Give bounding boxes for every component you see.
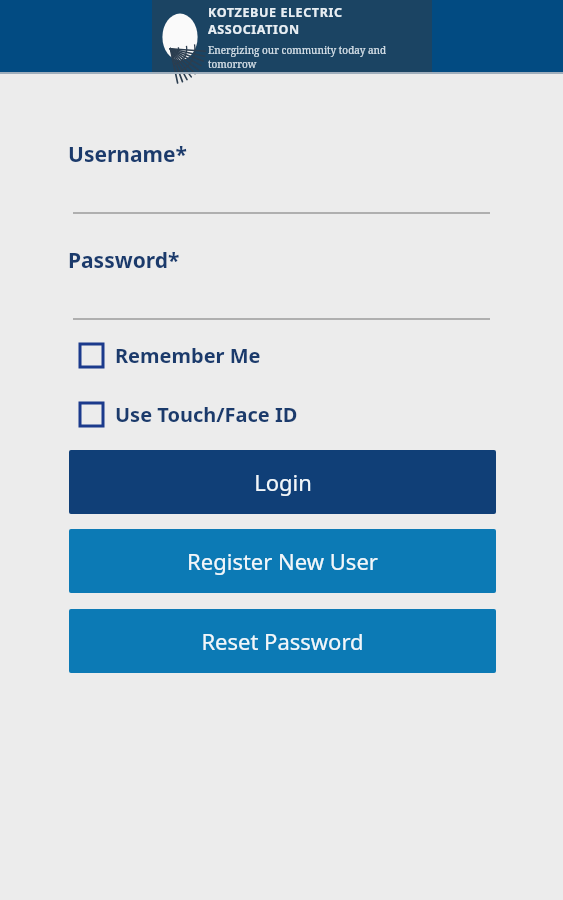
staticText: KOTZEBUE ELECTRIC ASSOCIATION (208, 4, 432, 38)
staticText: Reset Password (201, 626, 364, 656)
button[interactable]: Remember Me (80, 342, 261, 369)
staticText: Register New User (187, 546, 378, 576)
staticText: Username* (68, 140, 187, 169)
button[interactable]: Login (69, 450, 496, 514)
button[interactable]: Reset Password (69, 609, 496, 673)
button[interactable]: Use Touch/Face ID (80, 401, 298, 428)
button[interactable]: Register New User (69, 529, 496, 593)
staticText: Use Touch/Face ID (115, 401, 298, 428)
staticText: Login (254, 467, 312, 497)
staticText: Remember Me (115, 342, 261, 369)
staticText: Energizing our community today and tomor… (208, 43, 432, 71)
staticText: Password* (68, 246, 180, 275)
